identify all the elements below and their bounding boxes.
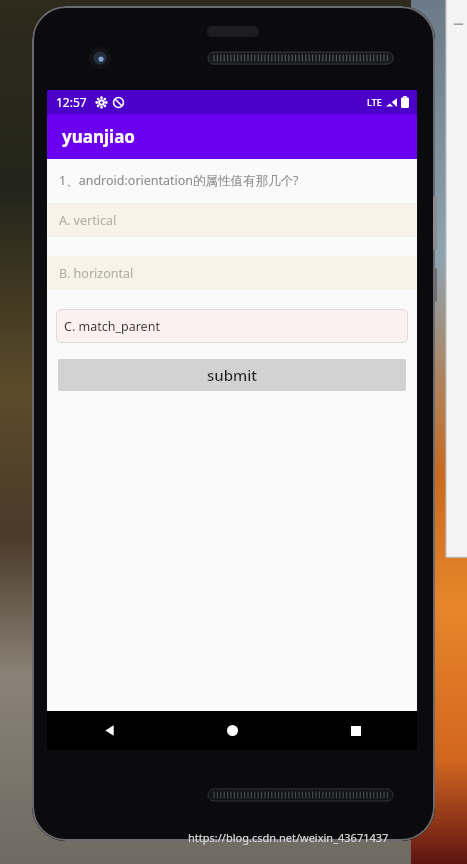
staticText: 12:57 bbox=[56, 94, 87, 110]
staticText: yuanjiao bbox=[62, 125, 135, 148]
staticText: https://blog.csdn.net/weixin_43671437 bbox=[188, 830, 389, 845]
staticText: LTE bbox=[367, 96, 382, 108]
button[interactable]: Back bbox=[47, 711, 171, 750]
staticText: B. horizontal bbox=[59, 265, 134, 282]
button[interactable]: A. vertical bbox=[47, 203, 417, 237]
button[interactable]: Recent apps bbox=[294, 711, 417, 750]
button[interactable]: submit bbox=[58, 359, 406, 391]
staticText: submit bbox=[207, 365, 257, 385]
button[interactable]: Home bbox=[171, 711, 294, 750]
staticText: A. vertical bbox=[59, 212, 117, 229]
staticText: 1、android:orientation的属性值有那几个? bbox=[59, 172, 299, 189]
button[interactable]: B. horizontal bbox=[47, 256, 417, 290]
staticText: C. match_parent bbox=[64, 318, 160, 335]
button[interactable]: C. match_parent bbox=[56, 309, 408, 343]
